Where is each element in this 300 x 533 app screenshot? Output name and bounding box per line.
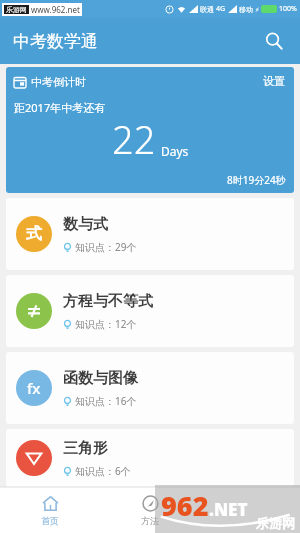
staticText: 设置 [263,74,285,88]
button[interactable]: 设置 [263,74,285,88]
staticText: 中考倒计时 [31,75,86,89]
staticText: 式 [26,224,42,244]
button[interactable] [200,487,300,533]
staticText: 100% [279,4,297,14]
staticText: fx [27,378,41,398]
staticText: www.962.net [31,4,80,15]
staticText: 方程与不等式 [63,292,153,311]
staticText: 联通 [200,5,214,14]
staticText: 4G [216,4,226,14]
staticText: 首页 [41,515,59,526]
staticText: Days [161,143,189,159]
staticText: 乐游网 [256,515,295,531]
staticText: 数与式 [63,215,108,234]
staticText: 移动 [239,5,253,14]
staticText: 三角形 [63,439,108,458]
button[interactable]: 方程与不等式 [6,275,294,347]
staticText: 知识点：12个 [75,317,137,331]
button[interactable]: 三角形 [6,429,294,487]
button[interactable]: Search [258,25,290,57]
staticText: .NET [209,498,248,521]
button[interactable]: fx [6,352,294,424]
staticText: 知识点：16个 [75,394,137,408]
staticText: 962 [161,487,209,524]
staticText: 22 [112,113,156,165]
staticText: 知识点：6个 [75,464,131,478]
button[interactable]: 方法 [100,487,200,533]
button[interactable]: 首页 [0,487,100,533]
staticText: ⚡ [255,6,260,13]
staticText: 中考数学通 [13,31,98,52]
staticText: 方法 [141,515,159,526]
button[interactable]: 中考倒计时 [6,67,294,193]
staticText: 乐游网 [6,5,27,14]
staticText: 知识点：29个 [75,240,137,254]
staticText: 函数与图像 [63,369,138,388]
staticText: 8时19分24秒 [227,173,286,187]
staticText: 距2017年中考还有 [14,100,106,115]
button[interactable]: 式 [6,198,294,270]
